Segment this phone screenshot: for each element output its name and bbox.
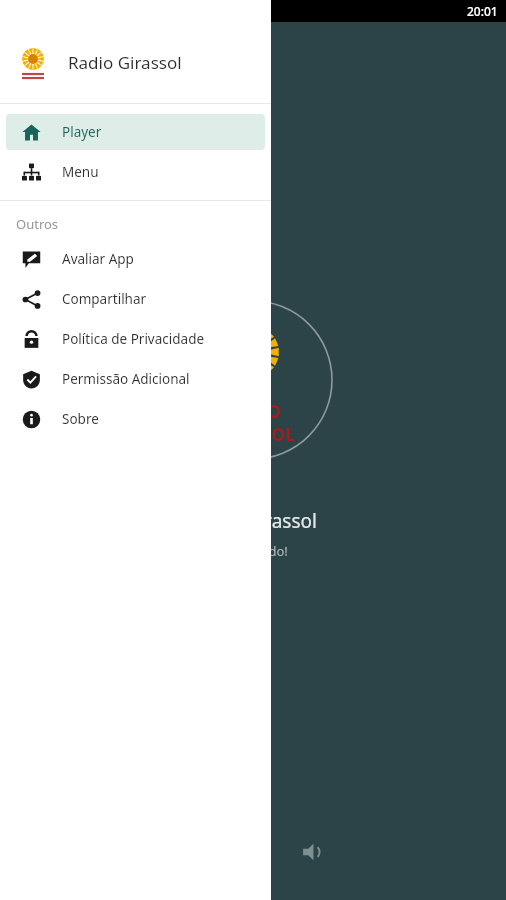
- staticText: Bem Vindo!: [218, 542, 288, 560]
- staticText: Sobre: [62, 410, 99, 428]
- staticText: Outros: [16, 215, 59, 233]
- button[interactable]: Compartilhar: [6, 281, 265, 317]
- button[interactable]: Permissão Adicional: [6, 361, 265, 397]
- staticText: Compartilhar: [62, 290, 147, 308]
- button[interactable]: Política de Privacidade: [6, 321, 265, 357]
- button[interactable]: Player: [6, 114, 265, 150]
- staticText: Menu: [62, 163, 99, 181]
- staticText: Player: [62, 123, 102, 141]
- staticText: GIRASSOL: [211, 423, 295, 446]
- button[interactable]: Volume: [293, 832, 333, 872]
- staticText: Permissão Adicional: [62, 370, 190, 388]
- staticText: Radio Girassol: [190, 508, 317, 534]
- staticText: Política de Privacidade: [62, 330, 205, 348]
- staticText: 20:01: [467, 3, 498, 19]
- button[interactable]: Radio Girassol: [0, 22, 271, 103]
- staticText: Avaliar App: [62, 250, 134, 268]
- staticText: RADIO: [225, 400, 281, 423]
- button[interactable]: Avaliar App: [6, 241, 265, 277]
- button[interactable]: Menu: [6, 154, 265, 190]
- button[interactable]: Sobre: [6, 401, 265, 437]
- staticText: Radio Girassol: [68, 51, 182, 74]
